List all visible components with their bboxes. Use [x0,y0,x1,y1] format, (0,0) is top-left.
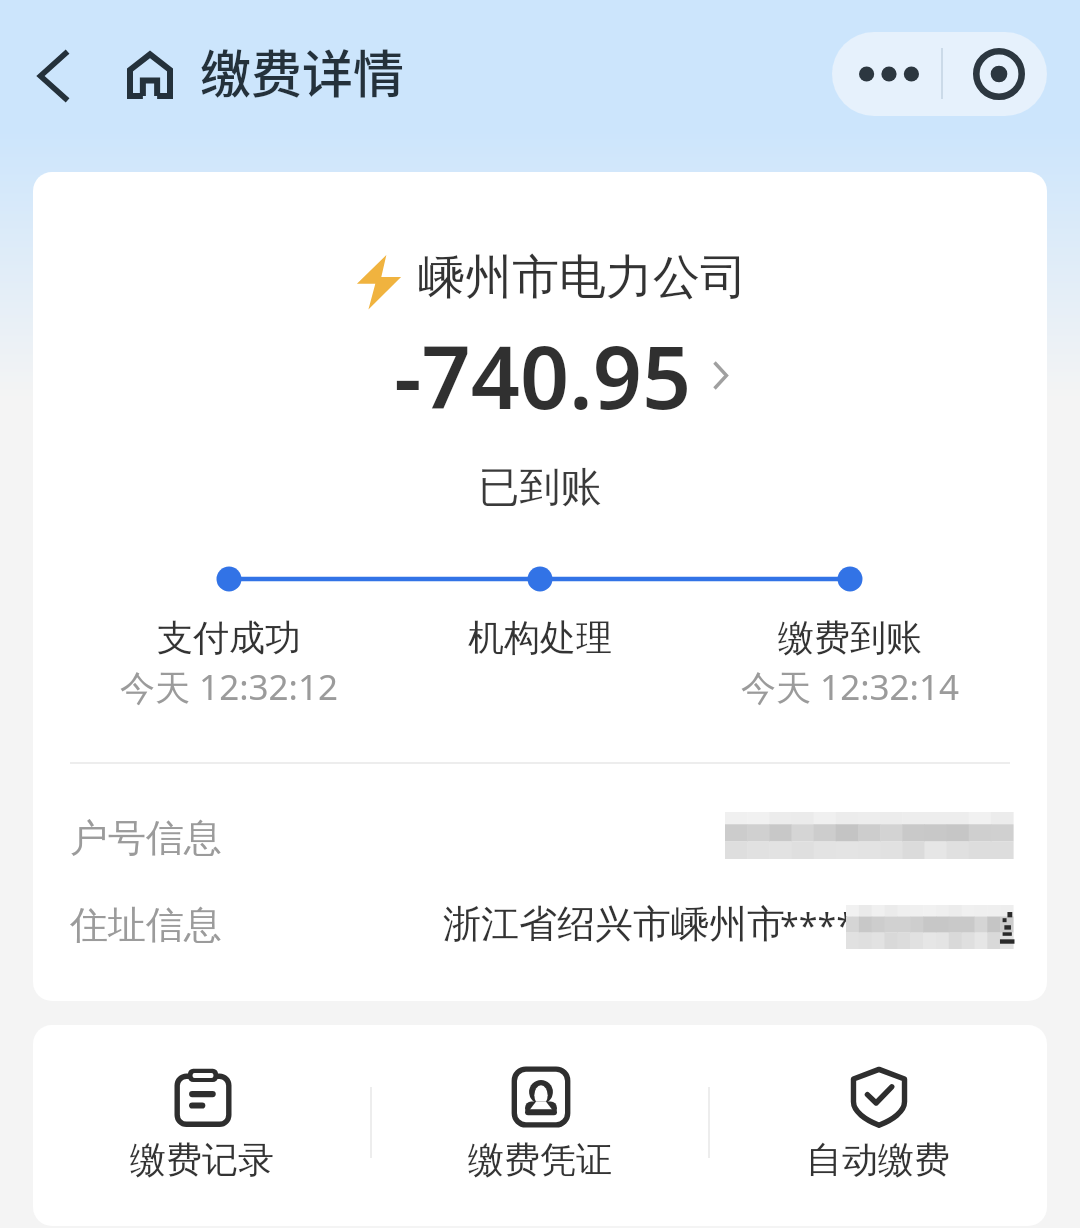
staticText: 浙江省绍兴市嵊州市 [443,900,785,948]
button[interactable]: Back [18,36,88,116]
staticText: 缴费凭证 [371,1137,709,1182]
staticText: 自动缴费 [709,1137,1047,1182]
staticText: 支付成功 [79,615,379,660]
button[interactable]: More options [837,32,941,116]
staticText: -740.95 [394,317,692,434]
staticText: 缴费记录 [33,1137,371,1182]
button[interactable]: -740.95 [54,317,1047,434]
staticText: 缴费详情 [200,34,405,108]
button[interactable]: 自动缴费 [709,1025,1047,1226]
button[interactable]: 缴费记录 [33,1025,371,1226]
button[interactable]: Home [115,39,185,111]
staticText: **** [780,902,855,948]
button[interactable]: Close mini program [950,32,1047,116]
staticText: 户号信息 [70,814,222,862]
staticText: 今天 12:32:12 [79,663,379,711]
staticText: 机构处理 [390,615,690,660]
staticText: 今天 12:32:14 [700,663,1000,711]
button[interactable]: 缴费凭证 [371,1025,709,1226]
staticText: 嵊州市电力公司 [418,248,747,307]
staticText: 缴费到账 [700,615,1000,660]
staticText: 住址信息 [70,901,222,949]
staticText: 已到账 [33,462,1047,514]
